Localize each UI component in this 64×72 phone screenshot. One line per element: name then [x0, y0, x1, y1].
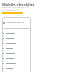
- staticText: whatever you need to kno: [2, 6, 29, 9]
- button[interactable]: List item: [3, 61, 23, 66]
- button[interactable]: List item: [3, 31, 23, 36]
- button[interactable]: Overview text he: [3, 21, 25, 24]
- staticText: about apps on y: [2, 9, 19, 12]
- button[interactable]: List item: [3, 66, 23, 71]
- staticText: Overview text he: [7, 21, 25, 24]
- button[interactable]: List item: [3, 41, 23, 46]
- button[interactable]: List item: [3, 56, 23, 61]
- staticText: Mobile checklist: [2, 2, 35, 7]
- button[interactable]: List item: [3, 51, 23, 56]
- button[interactable]: List item: [3, 36, 23, 41]
- button[interactable]: List item: [3, 46, 23, 51]
